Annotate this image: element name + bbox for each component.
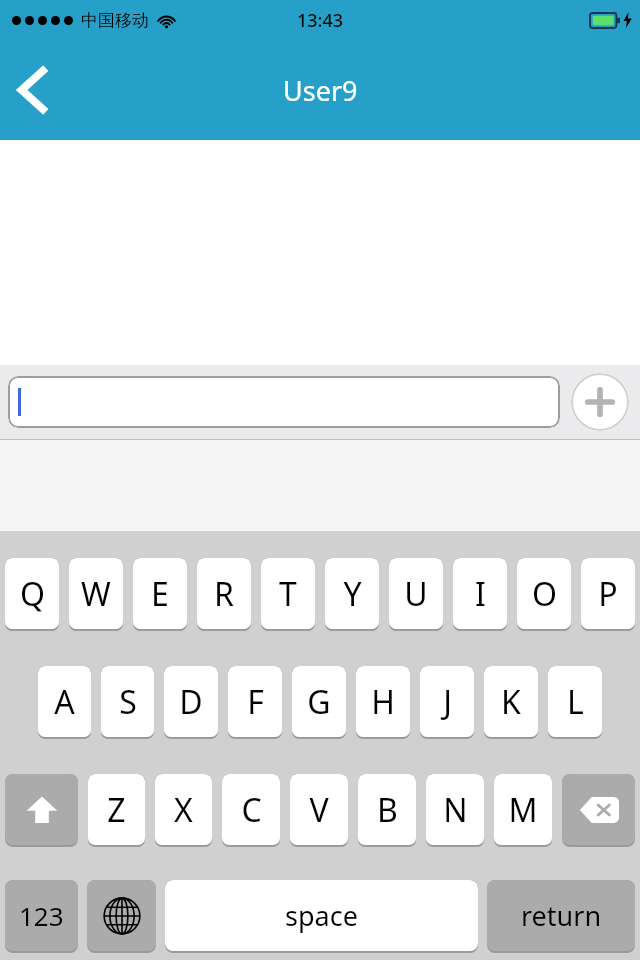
button[interactable]: U xyxy=(389,558,443,631)
staticText: 13:43 xyxy=(297,8,344,33)
button[interactable]: B xyxy=(358,774,416,847)
button[interactable]: C xyxy=(222,774,280,847)
button[interactable]: Delete xyxy=(562,774,635,847)
button[interactable]: Switch keyboard xyxy=(87,880,156,953)
button[interactable]: Back xyxy=(0,54,64,126)
staticText: Q xyxy=(20,572,45,616)
button[interactable]: A xyxy=(38,666,91,739)
staticText: P xyxy=(598,572,618,616)
staticText: N xyxy=(443,788,468,832)
button[interactable]: V xyxy=(290,774,348,847)
staticText: T xyxy=(279,572,297,616)
button[interactable]: M xyxy=(494,774,552,847)
button[interactable]: J xyxy=(420,666,474,739)
staticText: L xyxy=(567,680,584,724)
staticText: User9 xyxy=(283,72,358,109)
button[interactable]: Z xyxy=(88,774,145,847)
staticText: H xyxy=(371,680,395,724)
button[interactable]: Y xyxy=(325,558,379,631)
button[interactable]: F xyxy=(228,666,282,739)
button[interactable]: L xyxy=(548,666,602,739)
staticText: Z xyxy=(107,788,126,832)
button[interactable]: O xyxy=(517,558,571,631)
staticText: U xyxy=(404,572,428,616)
button[interactable]: 123 xyxy=(5,880,78,953)
staticText: M xyxy=(508,788,538,832)
button[interactable]: Shift xyxy=(5,774,78,847)
staticText: Y xyxy=(343,572,362,616)
button[interactable]: R xyxy=(197,558,251,631)
staticText: B xyxy=(377,788,398,832)
button[interactable]: P xyxy=(581,558,635,631)
staticText: I xyxy=(475,572,486,616)
staticText: A xyxy=(54,680,75,724)
button[interactable] xyxy=(8,376,560,428)
staticText: S xyxy=(119,680,137,724)
button[interactable]: I xyxy=(453,558,507,631)
staticText: D xyxy=(179,680,203,724)
button[interactable]: Add xyxy=(571,373,629,431)
staticText: C xyxy=(241,788,262,832)
staticText: K xyxy=(501,680,521,724)
button[interactable]: G xyxy=(292,666,346,739)
staticText: O xyxy=(532,572,557,616)
button[interactable]: E xyxy=(133,558,187,631)
button[interactable]: T xyxy=(261,558,315,631)
staticText: J xyxy=(443,680,452,724)
button[interactable]: K xyxy=(484,666,538,739)
button[interactable]: H xyxy=(356,666,410,739)
button[interactable]: space xyxy=(165,880,478,953)
button[interactable]: S xyxy=(101,666,154,739)
staticText: R xyxy=(214,572,234,616)
staticText: F xyxy=(247,680,264,724)
staticText: return xyxy=(521,897,602,934)
staticText: space xyxy=(285,897,358,934)
button[interactable]: Q xyxy=(5,558,59,631)
staticText: V xyxy=(309,788,329,832)
staticText: E xyxy=(151,572,169,616)
button[interactable]: W xyxy=(69,558,123,631)
staticText: X xyxy=(174,788,193,832)
button[interactable]: D xyxy=(164,666,218,739)
button[interactable]: X xyxy=(155,774,212,847)
staticText: 123 xyxy=(19,898,64,933)
button[interactable]: return xyxy=(487,880,635,953)
button[interactable]: N xyxy=(426,774,484,847)
staticText: W xyxy=(81,572,111,616)
staticText: G xyxy=(307,680,331,724)
staticText: 中国移动 xyxy=(81,10,149,31)
